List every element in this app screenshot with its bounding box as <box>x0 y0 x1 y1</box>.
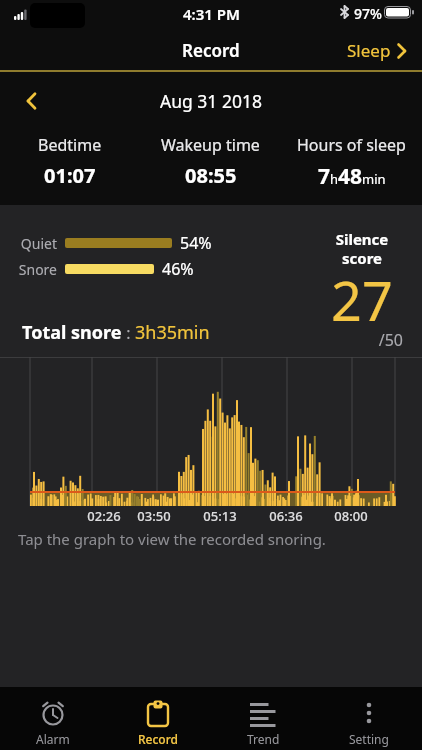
staticText: Hours of sleep <box>297 134 406 156</box>
button[interactable]: Trend <box>210 687 316 750</box>
staticText: Trend <box>247 731 280 747</box>
staticText: 02:26 <box>79 507 129 525</box>
staticText: : <box>122 322 135 344</box>
staticText: 05:13 <box>195 507 245 525</box>
staticText: 08:00 <box>326 507 376 525</box>
staticText: Tap the graph to view the recorded snori… <box>18 529 326 549</box>
staticText: 08:55 <box>185 162 237 189</box>
staticText: 27 <box>322 263 402 337</box>
staticText: Record <box>182 39 240 62</box>
staticText: 4:31 PM <box>183 4 240 24</box>
staticText: Silence score <box>322 229 402 268</box>
button[interactable]: Setting <box>316 687 422 750</box>
staticText: Sleep <box>347 39 391 62</box>
button[interactable]: Sleep <box>343 35 410 66</box>
staticText: 46% <box>162 258 194 280</box>
staticText: Total snore <box>22 320 122 345</box>
staticText: 03:50 <box>129 507 179 525</box>
staticText: 06:36 <box>261 507 311 525</box>
staticText: 7h48min <box>318 162 386 191</box>
button[interactable]: Alarm <box>0 687 105 750</box>
staticText: Aug 31 2018 <box>160 89 262 113</box>
staticText: Quiet <box>10 234 57 253</box>
staticText: 97% <box>354 4 382 23</box>
staticText: 54% <box>180 232 212 254</box>
staticText: Snore <box>10 260 57 279</box>
staticText: Wakeup time <box>161 134 260 156</box>
button[interactable] <box>23 89 40 113</box>
staticText: /50 <box>339 329 403 351</box>
staticText: Bedtime <box>38 134 102 156</box>
staticText: Record <box>138 731 178 747</box>
staticText: Setting <box>349 731 389 747</box>
button[interactable]: Record <box>105 687 210 750</box>
button[interactable] <box>0 357 422 506</box>
staticText: Alarm <box>36 731 70 747</box>
staticText: 3h35min <box>135 320 210 345</box>
staticText: 01:07 <box>44 162 96 189</box>
